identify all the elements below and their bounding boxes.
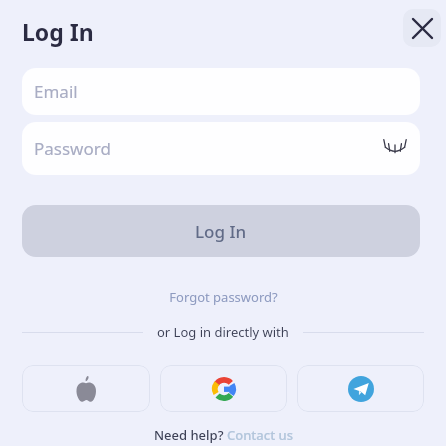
button[interactable]: Close — [403, 9, 441, 47]
button[interactable]: Sign in with Telegram — [297, 365, 424, 412]
staticText: or Log in directly with — [157, 323, 289, 341]
button[interactable]: Log In — [22, 205, 420, 257]
staticText: Log In — [22, 16, 94, 47]
button[interactable]: Show password — [380, 134, 410, 164]
staticText: Password — [34, 137, 111, 160]
button[interactable]: Sign in with Apple — [22, 365, 150, 412]
staticText: Forgot password? — [169, 288, 278, 306]
staticText: Contact us — [227, 426, 293, 444]
button[interactable]: Email — [22, 68, 420, 115]
button[interactable]: Password — [22, 122, 420, 175]
button[interactable]: Contact us — [227, 426, 293, 444]
staticText: Log In — [195, 220, 247, 243]
button[interactable]: Forgot password? — [0, 286, 446, 308]
button[interactable]: Sign in with Google — [160, 365, 287, 412]
staticText: Email — [34, 80, 78, 103]
staticText: Need help? — [154, 426, 227, 444]
